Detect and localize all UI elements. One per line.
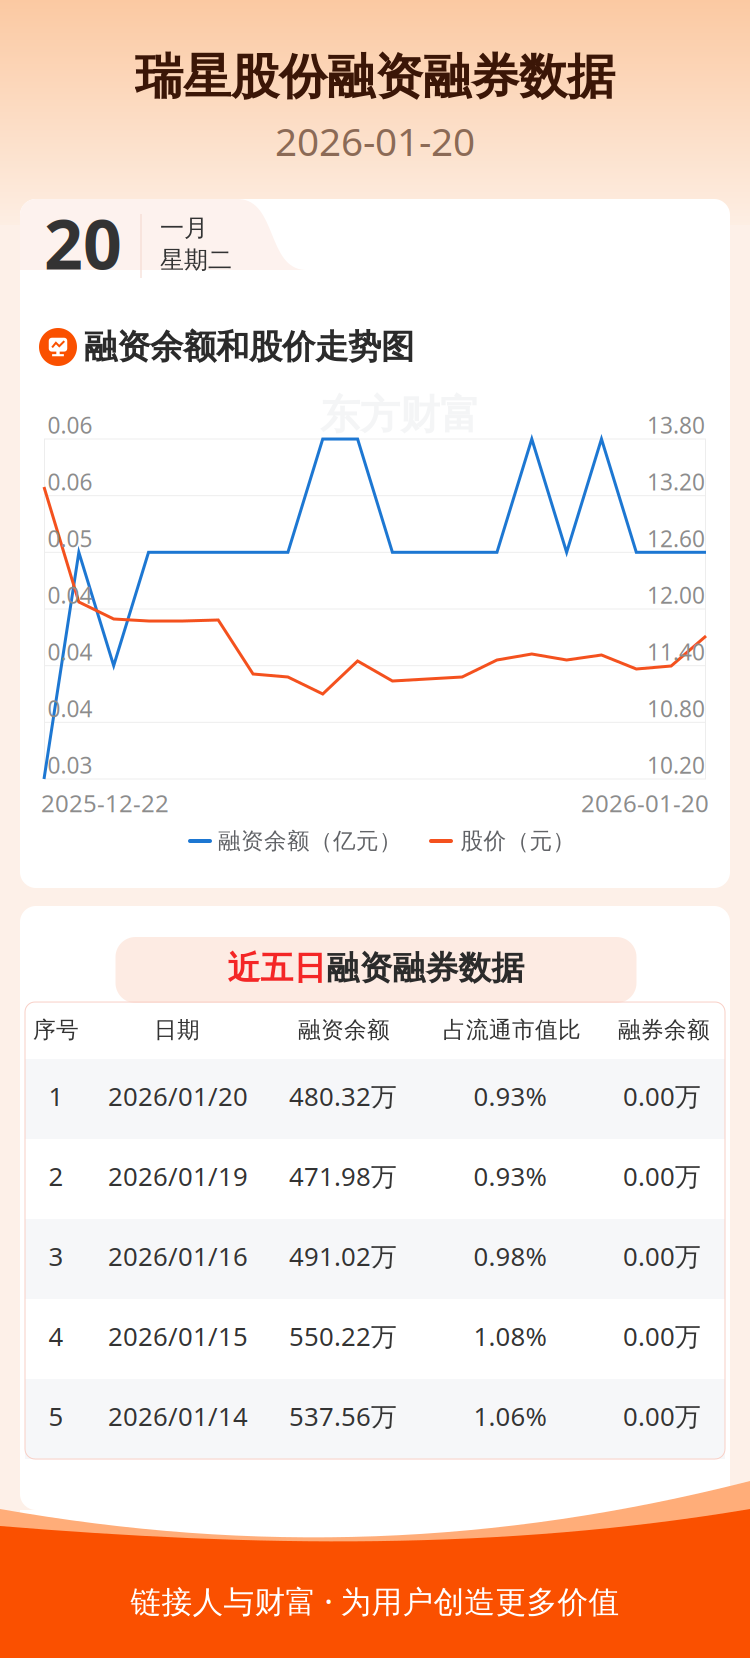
staticText: 融资余额和股价走势图 (84, 326, 414, 367)
staticText: 瑞星股份融资融券数据 (135, 47, 615, 106)
staticText: 0.04 (47, 637, 92, 667)
staticText: 占流通市值比 (443, 1016, 581, 1044)
staticText: 1 (48, 1078, 63, 1113)
staticText: 0.06 (47, 467, 92, 497)
staticText: 11.40 (647, 637, 705, 667)
staticText: 东方财富 (320, 390, 480, 439)
staticText: 0.00万 (623, 1318, 701, 1353)
staticText: 0.93% (473, 1158, 546, 1193)
staticText: 20 (44, 198, 122, 288)
staticText: 0.98% (473, 1238, 546, 1273)
staticText: 2026-01-20 (275, 115, 475, 167)
staticText: 10.20 (647, 750, 705, 780)
staticText: 链接人与财富 · 为用户创造更多价值 (130, 1581, 619, 1621)
staticText: 星期二 (160, 245, 232, 275)
staticText: 5 (48, 1398, 63, 1433)
staticText: 0.04 (47, 693, 92, 723)
staticText: 0.03 (47, 750, 92, 780)
staticText: 0.00万 (623, 1078, 701, 1113)
staticText: 一月 (160, 213, 208, 243)
staticText: 4 (48, 1318, 63, 1353)
staticText: 序号 (33, 1016, 79, 1044)
staticText: 融资余额 (298, 1016, 390, 1044)
staticText: 0.04 (47, 580, 92, 610)
staticText: 近五日 (227, 947, 326, 989)
staticText: 550.22万 (289, 1318, 397, 1353)
staticText: 10.80 (647, 693, 705, 723)
staticText: 2025-12-22 (41, 787, 169, 819)
staticText: 13.80 (647, 410, 705, 440)
staticText: 0.00万 (623, 1158, 701, 1193)
staticText: 2026/01/19 (108, 1158, 248, 1193)
staticText: 1.08% (473, 1318, 546, 1353)
staticText: 13.20 (647, 467, 705, 497)
staticText: 3 (48, 1238, 63, 1273)
staticText: 股价（元） (460, 827, 575, 855)
staticText: 2 (48, 1158, 63, 1193)
staticText: 0.00万 (623, 1398, 701, 1433)
staticText: 491.02万 (289, 1238, 397, 1273)
staticText: 537.56万 (289, 1398, 397, 1433)
staticText: 融资融券数据 (326, 947, 524, 989)
staticText: 融资余额（亿元） (218, 827, 402, 855)
staticText: 0.05 (47, 523, 92, 553)
staticText: 0.00万 (623, 1238, 701, 1273)
staticText: 2026/01/15 (108, 1318, 248, 1353)
staticText: 0.93% (473, 1078, 546, 1113)
staticText: 471.98万 (289, 1158, 397, 1193)
staticText: 2026/01/14 (108, 1398, 248, 1433)
staticText: 2026/01/20 (108, 1078, 248, 1113)
staticText: 1.06% (473, 1398, 546, 1433)
staticText: 融券余额 (618, 1016, 710, 1044)
staticText: 2026-01-20 (581, 787, 709, 819)
staticText: 12.60 (647, 523, 705, 553)
staticText: 0.06 (47, 410, 92, 440)
staticText: 12.00 (647, 580, 705, 610)
staticText: 480.32万 (289, 1078, 397, 1113)
staticText: 日期 (154, 1016, 200, 1044)
staticText: 2026/01/16 (108, 1238, 248, 1273)
